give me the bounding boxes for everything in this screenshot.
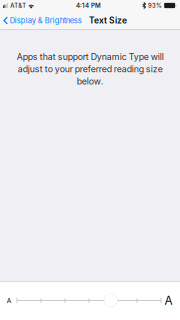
staticText: 4:14 PM [76,2,101,9]
staticText: A [7,296,12,305]
button[interactable]: Display & Brightness [0,13,84,28]
staticText: 93% [148,2,162,9]
staticText: A [164,293,172,308]
staticText: Display & Brightness [10,16,82,25]
staticText: Text Size [89,15,127,26]
staticText: Apps that support Dynamic Type will adju… [16,51,163,87]
button[interactable]: Text size [0,281,180,320]
staticText: AT&T [10,2,26,9]
